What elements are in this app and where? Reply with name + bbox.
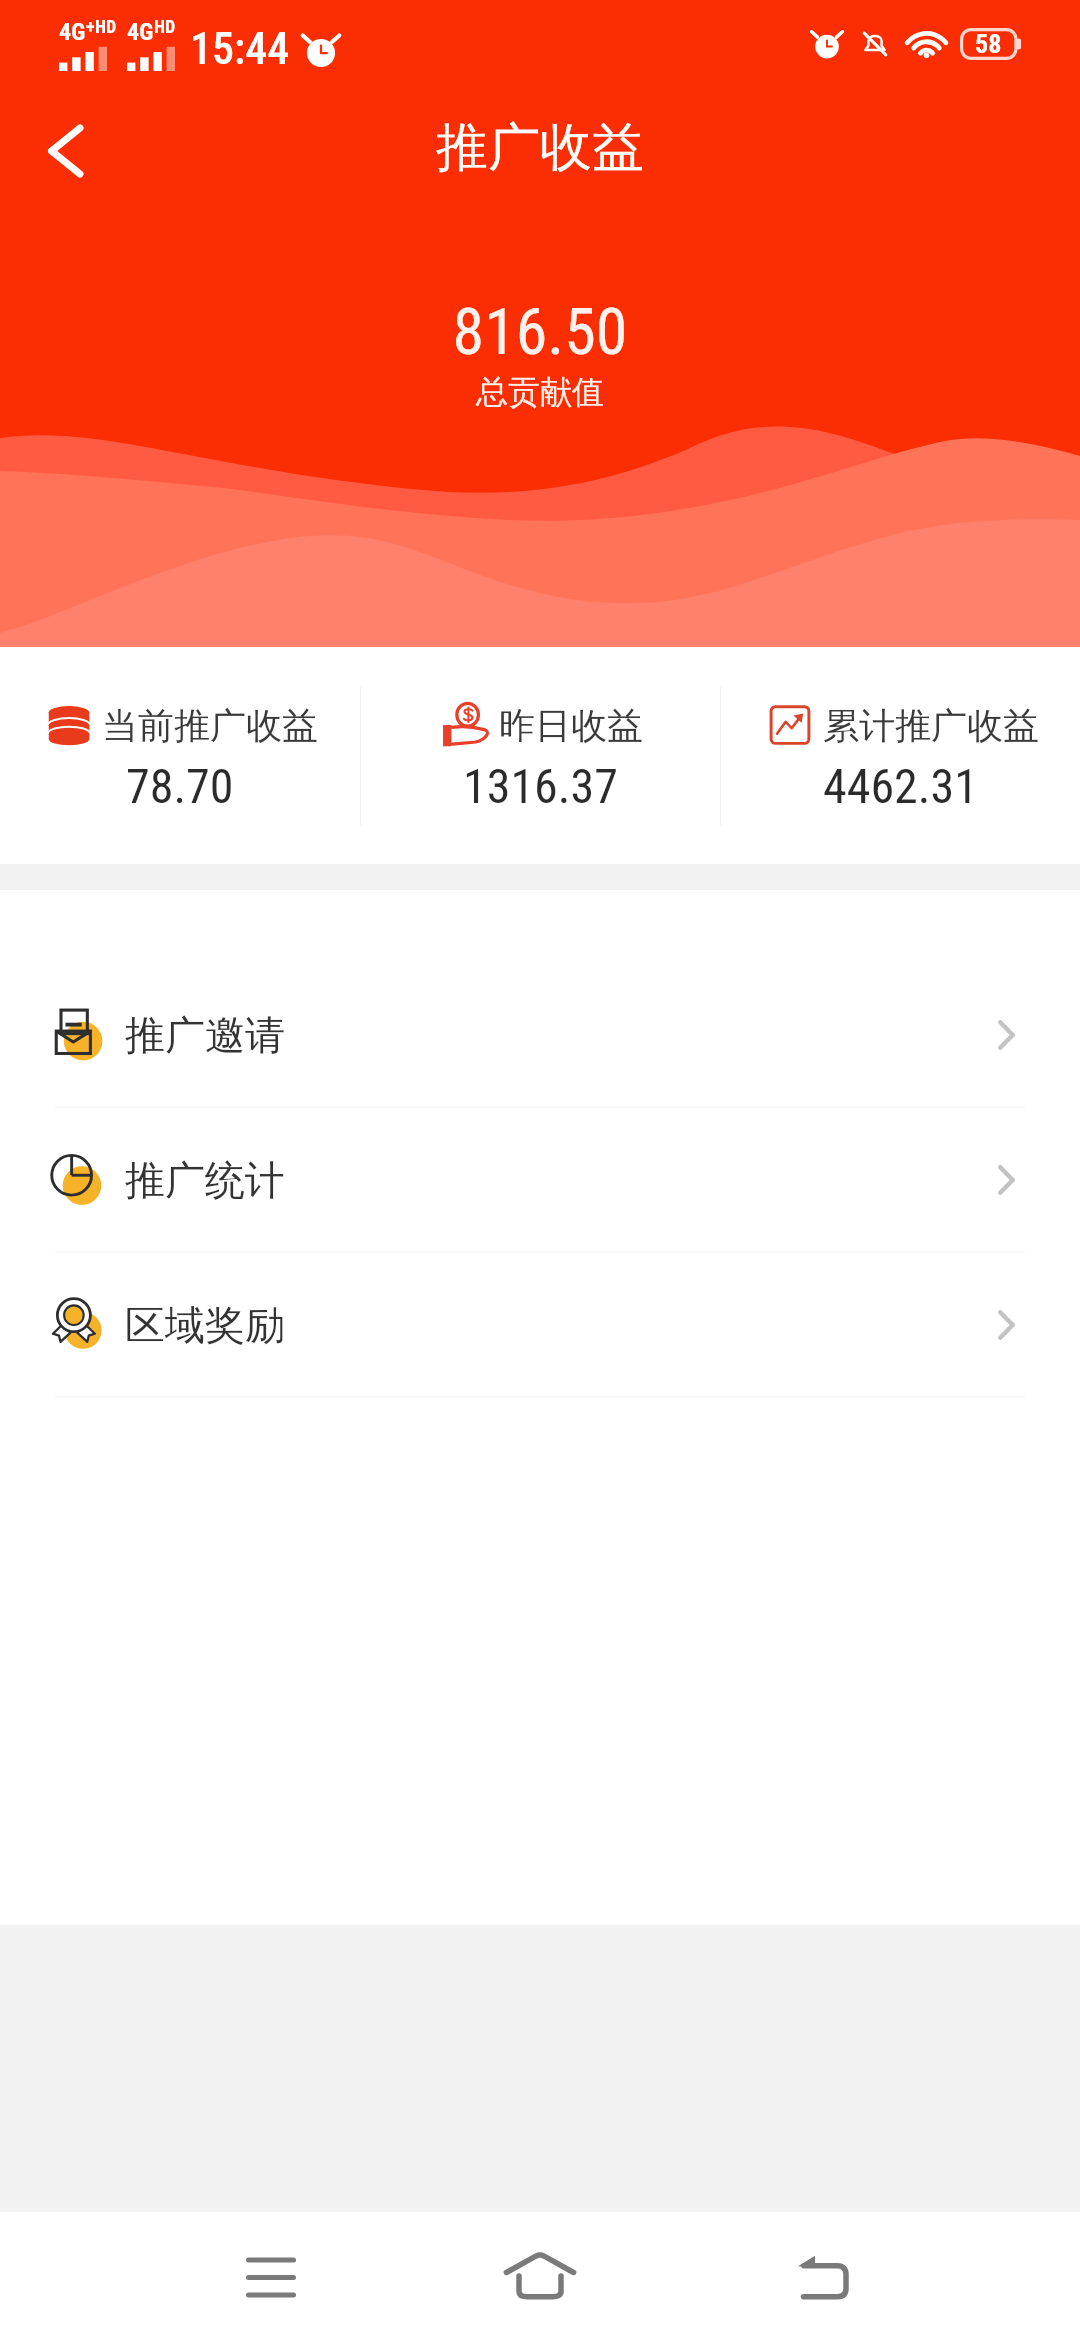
staticText: 4G: [59, 18, 86, 46]
staticText: 推广统计: [125, 1155, 285, 1205]
staticText: 累计推广收益: [823, 703, 1039, 748]
button[interactable]: 昨日收益: [361, 698, 720, 814]
staticText: HD: [95, 16, 117, 37]
staticText: 816.50: [0, 295, 1080, 370]
staticText: 推广邀请: [125, 1010, 285, 1060]
button[interactable]: 区域奖励: [0, 1253, 1080, 1396]
button[interactable]: Recent apps: [201, 2212, 341, 2340]
staticText: 4462.31: [823, 758, 978, 814]
staticText: 区域奖励: [125, 1300, 285, 1350]
staticText: 4G: [127, 18, 154, 46]
staticText: 当前推广收益: [102, 703, 318, 748]
button[interactable]: Back: [0, 88, 120, 208]
button[interactable]: Home: [470, 2212, 610, 2340]
staticText: 78.70: [126, 758, 234, 814]
button[interactable]: 推广统计: [0, 1108, 1080, 1251]
staticText: 推广收益: [436, 115, 644, 181]
staticText: 15:44: [190, 23, 290, 75]
button[interactable]: 累计推广收益: [721, 698, 1080, 814]
staticText: +: [86, 16, 95, 37]
button[interactable]: 当前推广收益: [0, 698, 360, 814]
staticText: 总贡献值: [0, 372, 1080, 412]
staticText: 昨日收益: [499, 703, 643, 748]
staticText: HD: [154, 16, 176, 37]
staticText: 1316.37: [463, 758, 618, 814]
staticText: 58: [975, 29, 1002, 59]
button[interactable]: Back: [753, 2212, 893, 2340]
button[interactable]: 推广邀请: [0, 963, 1080, 1106]
